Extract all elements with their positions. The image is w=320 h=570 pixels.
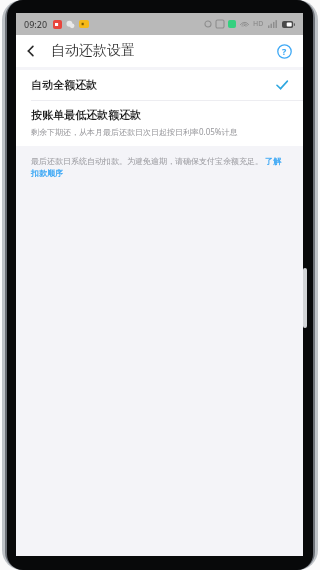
button[interactable]: 自动全额还款 bbox=[16, 70, 303, 100]
staticText: 自动全额还款 bbox=[31, 78, 97, 92]
button[interactable]: Help bbox=[271, 38, 297, 64]
staticText: 自动还款设置 bbox=[51, 42, 135, 60]
staticText: ? bbox=[282, 45, 287, 57]
staticText: 最后还款日系统自动扣款。为避免逾期，请确保支付宝余额充足。 了解扣款顺序 bbox=[31, 155, 288, 178]
button[interactable]: Back bbox=[16, 36, 46, 66]
button[interactable]: 按账单最低还款额还款 bbox=[16, 101, 303, 146]
staticText: 按账单最低还款额还款 bbox=[31, 108, 141, 122]
staticText: HD bbox=[253, 19, 264, 29]
staticText: 09:20 bbox=[24, 18, 48, 30]
staticText: 剩余下期还，从本月最后还款日次日起按日利率0.05%计息 bbox=[31, 126, 238, 137]
